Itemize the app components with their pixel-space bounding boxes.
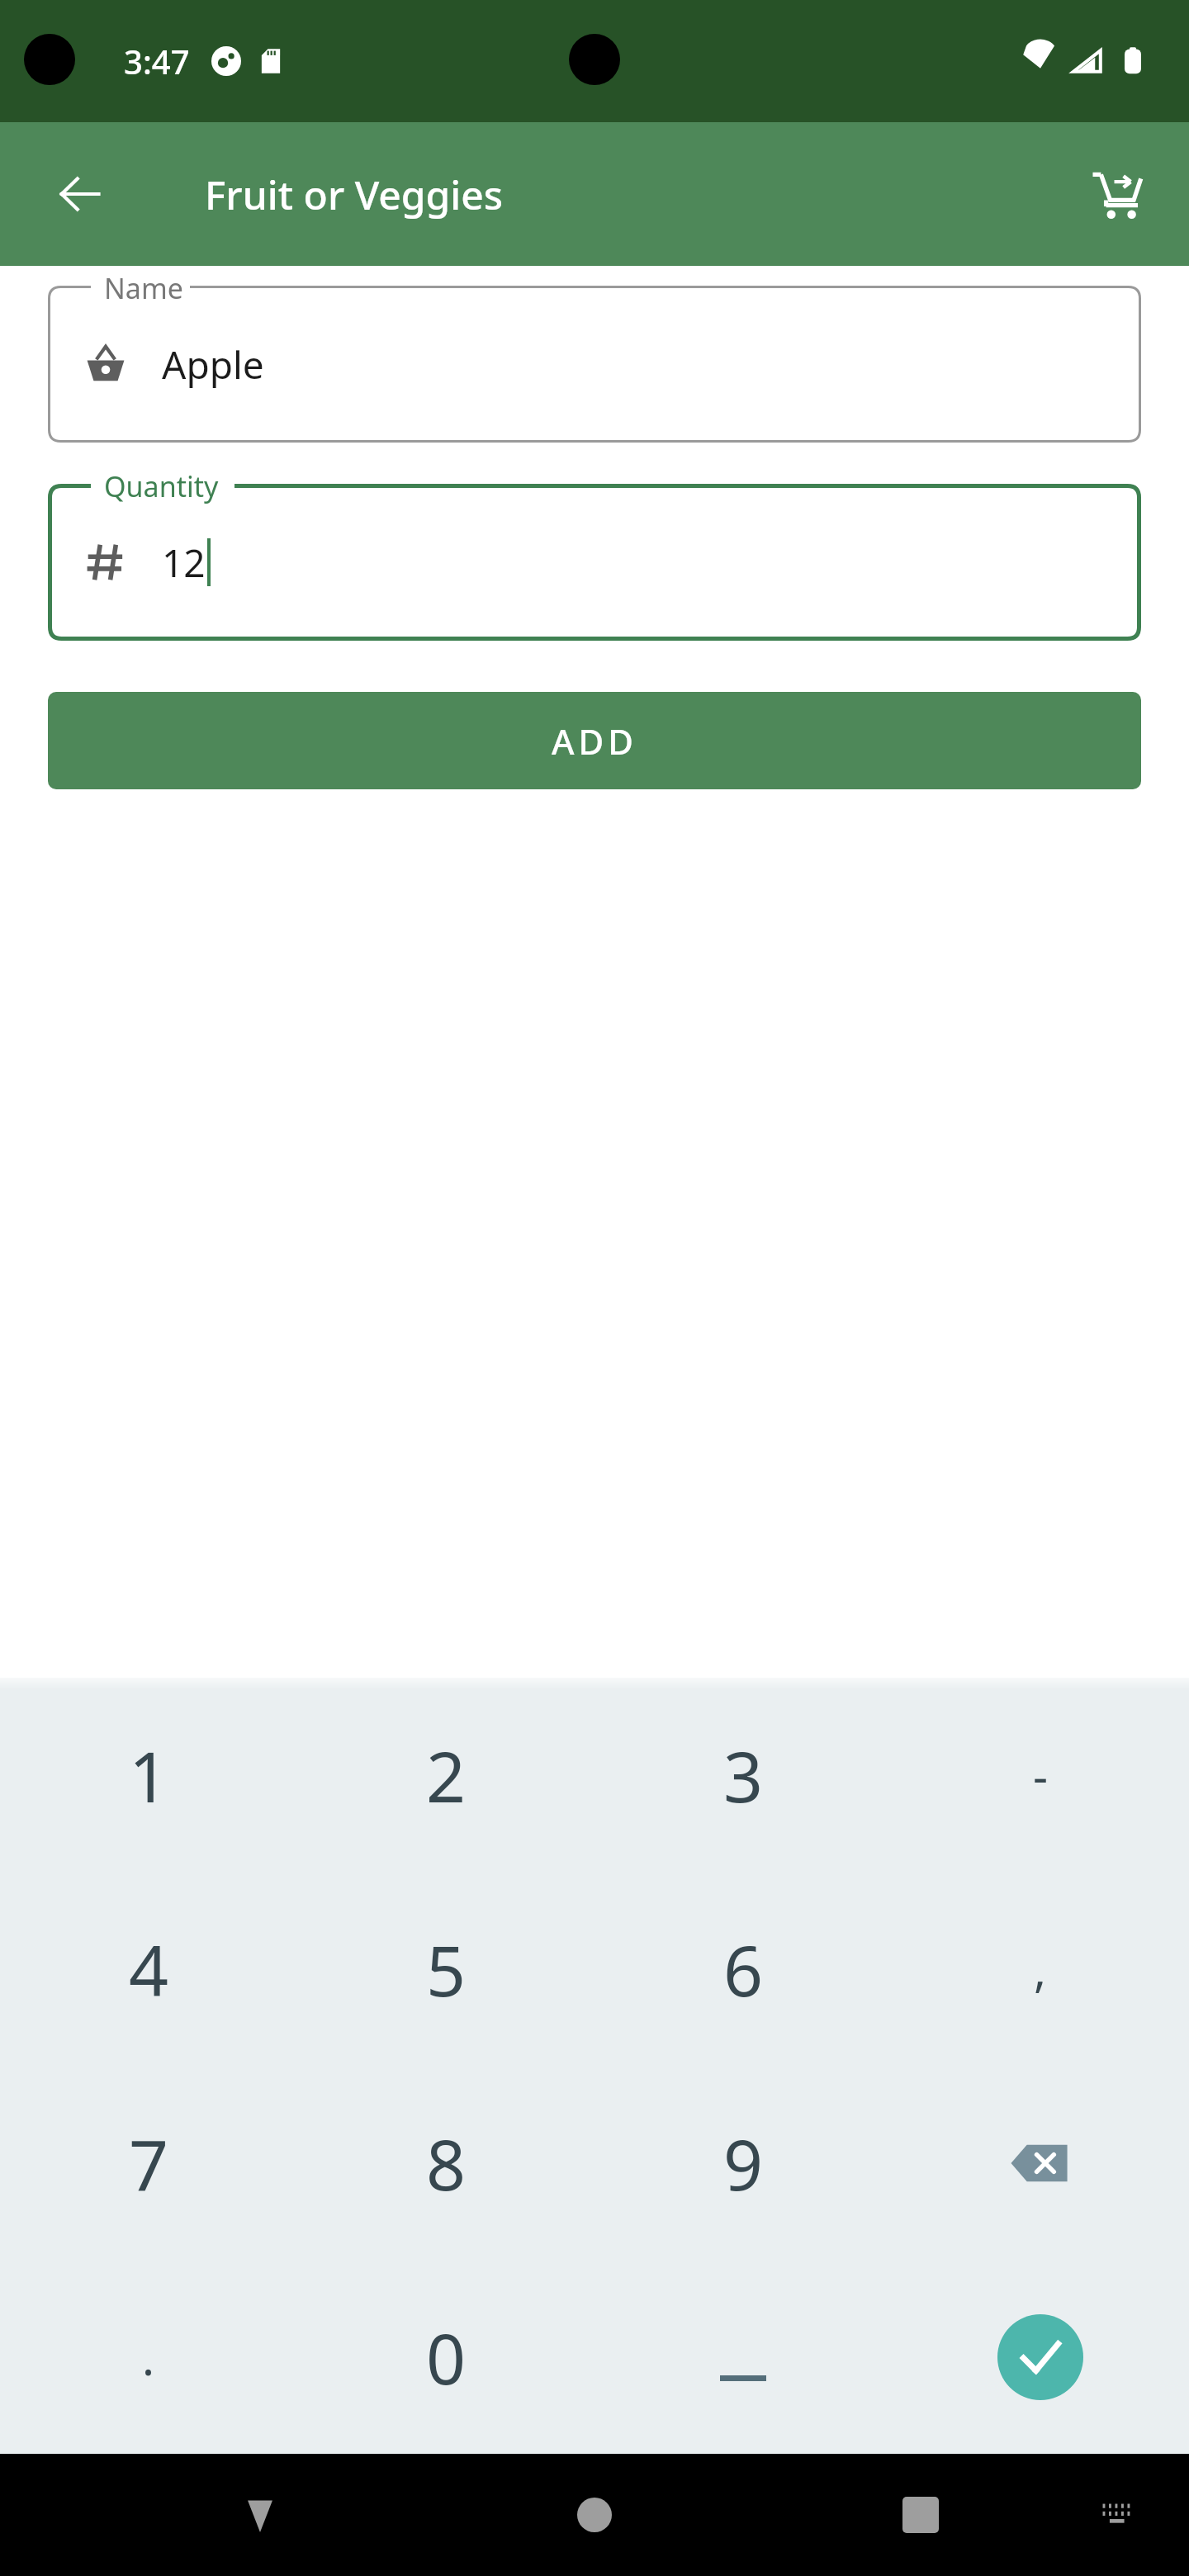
button[interactable]: 8 <box>297 2066 594 2260</box>
staticText: 4 <box>129 1922 169 2016</box>
button[interactable]: , <box>892 1872 1189 2066</box>
button[interactable]: Switch keyboard <box>1077 2474 1159 2556</box>
staticText: Fruit or Veggies <box>205 168 504 221</box>
staticText: , <box>1034 1938 1047 2001</box>
staticText: ADD <box>552 717 637 765</box>
button[interactable]: Recent apps <box>875 2469 966 2560</box>
button[interactable]: ADD <box>48 692 1141 789</box>
staticText: 3 <box>723 1728 764 1822</box>
button[interactable]: Backspace <box>892 2066 1189 2260</box>
button[interactable]: . <box>0 2260 297 2454</box>
staticText: 9 <box>723 2116 764 2210</box>
button[interactable]: 6 <box>594 1872 892 2066</box>
staticText: Name <box>104 269 183 307</box>
button[interactable]: - <box>892 1678 1189 1872</box>
button[interactable]: Home <box>549 2469 640 2560</box>
staticText: - <box>1033 1744 1049 1807</box>
button[interactable]: Back <box>40 154 119 234</box>
button[interactable]: 4 <box>0 1872 297 2066</box>
button[interactable]: Quantity <box>48 484 1141 641</box>
button[interactable]: 7 <box>0 2066 297 2260</box>
button[interactable]: Name <box>48 286 1141 443</box>
button[interactable]: Back <box>215 2469 306 2560</box>
button[interactable]: Done <box>892 2260 1189 2454</box>
button[interactable]: 0 <box>297 2260 594 2454</box>
staticText: 3:47 <box>124 39 190 83</box>
staticText: 8 <box>426 2116 467 2210</box>
button[interactable]: 9 <box>594 2066 892 2260</box>
staticText: 0 <box>426 2310 467 2404</box>
button[interactable]: Space <box>594 2260 892 2454</box>
button[interactable]: 1 <box>0 1678 297 1872</box>
staticText: 1 <box>129 1728 169 1822</box>
staticText: Quantity <box>104 467 219 505</box>
staticText: 7 <box>129 2116 169 2210</box>
button[interactable]: 2 <box>297 1678 594 1872</box>
staticText: 6 <box>723 1922 764 2016</box>
button[interactable]: 3 <box>594 1678 892 1872</box>
button[interactable]: 5 <box>297 1872 594 2066</box>
staticText: Apple <box>162 339 264 391</box>
staticText: 12 <box>162 537 206 589</box>
staticText: . <box>142 2326 155 2389</box>
staticText: 2 <box>426 1728 467 1822</box>
staticText: 5 <box>426 1922 467 2016</box>
button[interactable]: Shopping cart <box>1075 153 1158 235</box>
